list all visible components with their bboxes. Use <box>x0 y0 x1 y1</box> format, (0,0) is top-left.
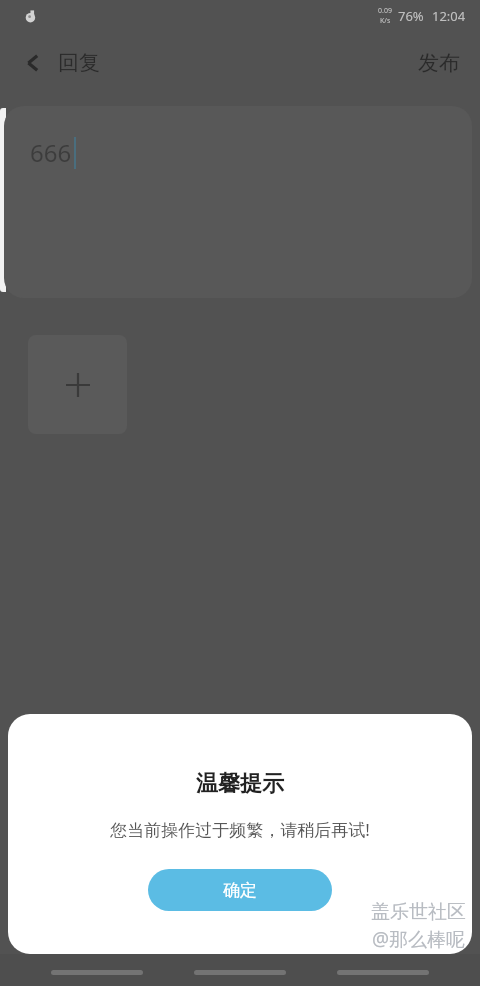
button[interactable]: 发布 <box>398 40 480 86</box>
staticText: 0.09 <box>378 6 392 16</box>
button[interactable]: Back <box>0 42 116 84</box>
staticText: @那么棒呢 <box>372 926 466 952</box>
button[interactable]: Back <box>337 965 429 979</box>
button[interactable]: Add image <box>28 335 127 434</box>
staticText: 盖乐世社区 <box>371 900 466 924</box>
staticText: 温馨提示 <box>196 770 284 798</box>
staticText: 12:04 <box>432 7 466 25</box>
button[interactable]: Home <box>194 965 286 979</box>
staticText: 您当前操作过于频繁，请稍后再试! <box>110 818 370 841</box>
staticText: 回复 <box>58 50 100 76</box>
staticText: 76% <box>398 7 424 25</box>
other: Back <box>24 53 44 73</box>
button[interactable]: 666 <box>4 106 472 298</box>
staticText: 确定 <box>223 880 257 901</box>
staticText: 666 <box>30 136 72 169</box>
staticText: 发布 <box>418 50 460 76</box>
button[interactable]: 确定 <box>148 869 332 911</box>
staticText: K/s <box>380 16 391 26</box>
button[interactable]: Recents <box>51 965 143 979</box>
